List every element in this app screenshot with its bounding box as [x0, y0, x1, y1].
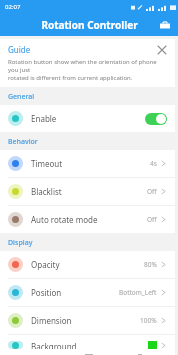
staticText: Bottom_Left [119, 288, 157, 297]
staticText: Guide [8, 44, 156, 55]
button[interactable]: Dimension [0, 307, 175, 334]
button[interactable]: Background [0, 335, 175, 355]
staticText: Timeout [31, 158, 150, 169]
staticText: 4s [150, 159, 157, 168]
staticText: General [8, 92, 35, 102]
staticText: Background [31, 341, 148, 349]
staticText: Opacity [31, 259, 144, 270]
staticText: Off [147, 187, 157, 196]
staticText: Position [31, 287, 119, 298]
staticText: Auto rotate mode [31, 214, 147, 225]
staticText: Display [8, 238, 33, 248]
staticText: 100% [140, 316, 157, 325]
staticText: 02:07 [5, 3, 21, 11]
button[interactable]: Close guide [156, 44, 167, 55]
staticText: Off [147, 215, 157, 224]
button[interactable]: Blacklist [0, 178, 175, 205]
staticText: Behavior [8, 137, 38, 147]
button[interactable]: Position [0, 279, 175, 306]
button[interactable]: Store [158, 18, 172, 32]
staticText: Enable [31, 113, 145, 124]
staticText: Rotation button show when the orientatio… [8, 58, 167, 82]
staticText: Dimension [31, 315, 140, 326]
button[interactable]: Enable [0, 105, 175, 132]
button[interactable]: Auto rotate mode [0, 206, 175, 233]
staticText: 80% [144, 260, 157, 269]
staticText: Rotation Controller [41, 18, 138, 32]
button[interactable]: Timeout [0, 150, 175, 177]
button[interactable]: Opacity [0, 251, 175, 278]
staticText: Blacklist [31, 186, 147, 197]
